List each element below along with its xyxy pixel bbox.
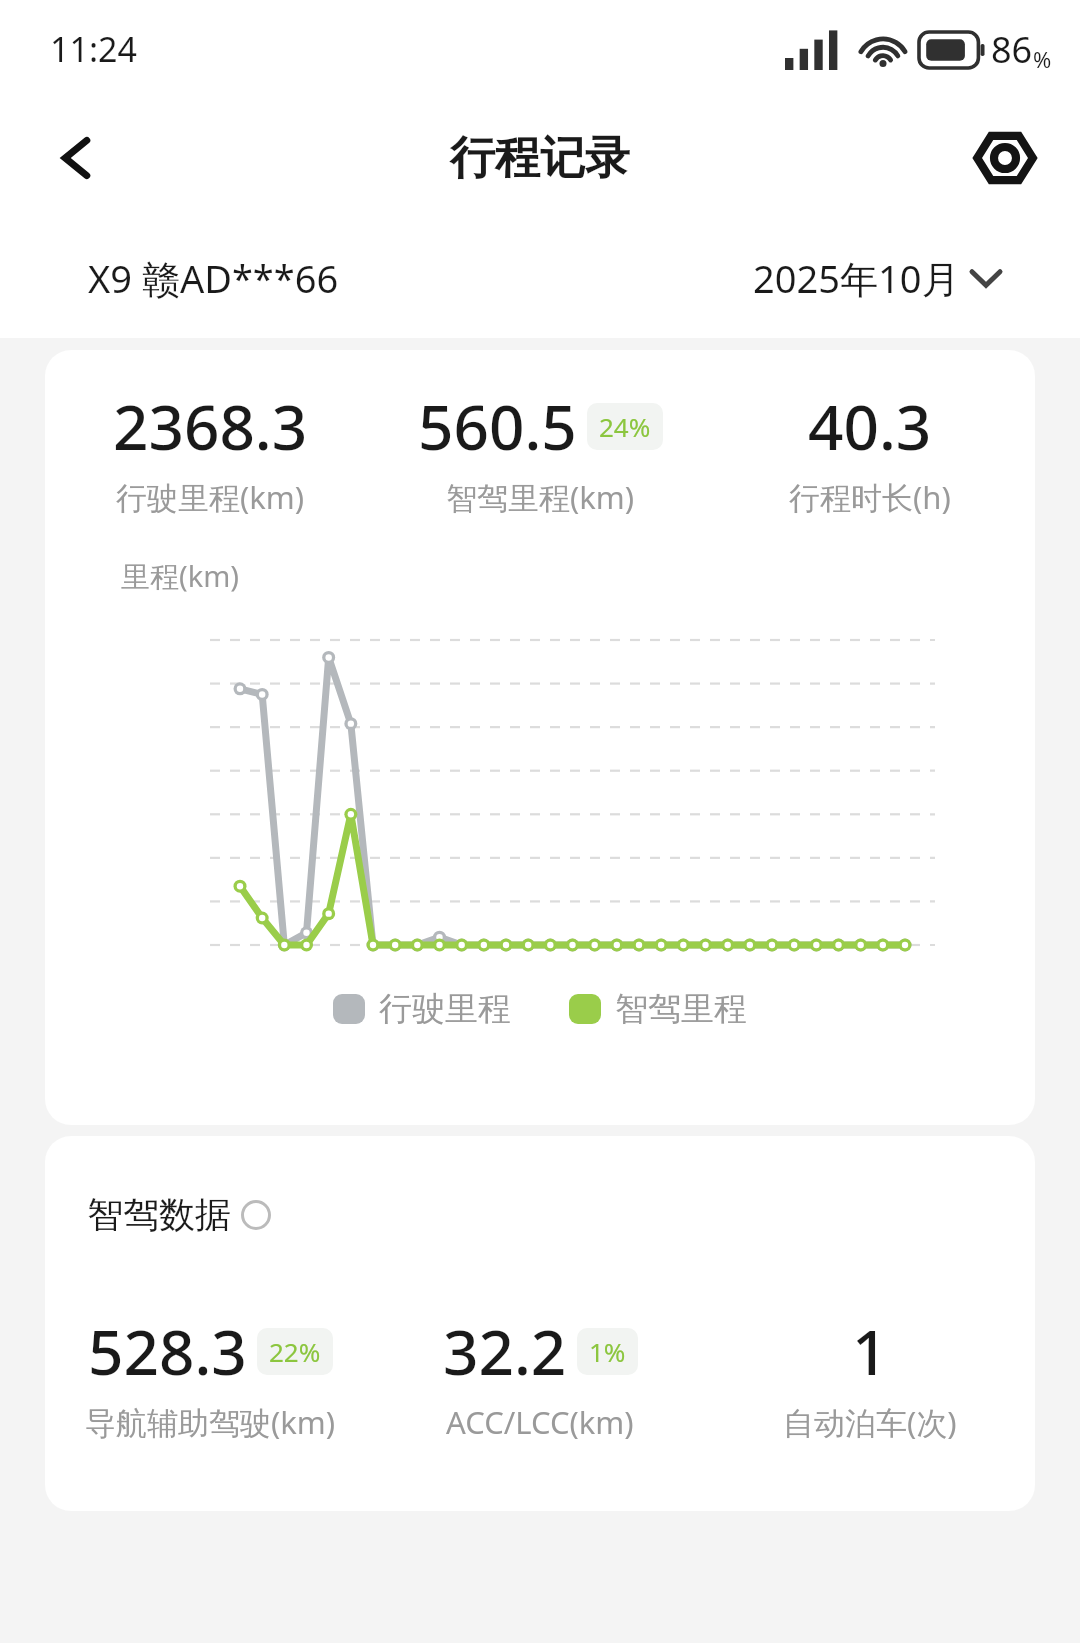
staticText: 1 bbox=[852, 1309, 888, 1393]
staticText: 22% bbox=[269, 1334, 321, 1369]
staticText: 2368.3 bbox=[113, 384, 308, 468]
staticText: 560.5 bbox=[418, 384, 577, 468]
button[interactable]: 智驾数据 bbox=[87, 1192, 271, 1237]
staticText: ACC/LCC(km) bbox=[446, 1401, 634, 1443]
staticText: 行驶里程 bbox=[379, 988, 511, 1030]
staticText: 里程(km) bbox=[121, 556, 240, 596]
staticText: 行驶里程(km) bbox=[116, 476, 305, 518]
staticText: 11:24 bbox=[50, 26, 137, 72]
staticText: 自动泊车(次) bbox=[783, 1401, 957, 1443]
staticText: 40.3 bbox=[808, 384, 932, 468]
staticText: 行程时长(h) bbox=[789, 476, 951, 518]
staticText: 智驾数据 bbox=[87, 1192, 231, 1237]
button[interactable]: Settings bbox=[960, 113, 1050, 203]
staticText: X9 赣AD***66 bbox=[88, 252, 339, 304]
staticText: % bbox=[1033, 44, 1052, 74]
button[interactable]: Back bbox=[30, 110, 126, 206]
button[interactable]: 2025年10月 bbox=[753, 252, 1000, 304]
staticText: 导航辅助驾驶(km) bbox=[85, 1401, 336, 1443]
button[interactable]: 行驶里程 bbox=[333, 988, 511, 1030]
staticText: 1% bbox=[589, 1334, 626, 1369]
staticText: 32.2 bbox=[443, 1309, 567, 1393]
staticText: 行程记录 bbox=[450, 130, 630, 187]
staticText: 86 bbox=[991, 25, 1033, 74]
staticText: 528.3 bbox=[88, 1309, 247, 1393]
button[interactable]: 智驾里程 bbox=[569, 988, 747, 1030]
staticText: 2025年10月 bbox=[753, 252, 960, 304]
staticText: 智驾里程 bbox=[615, 988, 747, 1030]
staticText: 智驾里程(km) bbox=[446, 476, 635, 518]
staticText: 24% bbox=[599, 409, 651, 444]
